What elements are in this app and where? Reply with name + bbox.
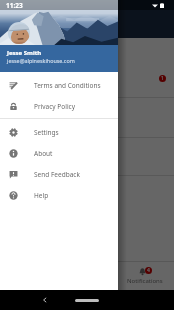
button[interactable]: About [0, 143, 118, 164]
staticText: Currently [13, 73, 48, 84]
staticText: Terms and Conditions [34, 81, 101, 90]
staticText: Settings [34, 128, 59, 137]
staticText: Snow report [13, 113, 59, 124]
button[interactable]: Home [75, 299, 99, 302]
staticText: Alpine Ski House [13, 43, 68, 53]
staticText: Jesse Smith [7, 49, 42, 57]
staticText: 4 [147, 267, 150, 274]
staticText: About [34, 149, 53, 158]
staticText: jesse@alpineskihouse.com [7, 57, 75, 64]
staticText: Send Feedback [34, 170, 80, 179]
staticText: Notifications [127, 277, 163, 285]
button[interactable]: Currently [0, 58, 174, 98]
staticText: 11:23 [6, 1, 23, 10]
button[interactable]: Settings [0, 122, 118, 143]
button[interactable]: Privacy Policy [0, 96, 118, 117]
button[interactable]: 4 [116, 261, 174, 290]
button[interactable]: Send Feedback [0, 164, 118, 185]
button[interactable]: Snow report [0, 98, 174, 138]
button[interactable]: Lift status [0, 138, 174, 176]
staticText: Lift status [13, 152, 50, 163]
staticText: 1 [161, 75, 164, 82]
button[interactable]: Help [0, 185, 118, 206]
button[interactable]: Back [40, 295, 50, 305]
staticText: Help [34, 191, 49, 200]
button[interactable]: Terms and Conditions [0, 75, 118, 96]
staticText: Privacy Policy [34, 102, 76, 111]
